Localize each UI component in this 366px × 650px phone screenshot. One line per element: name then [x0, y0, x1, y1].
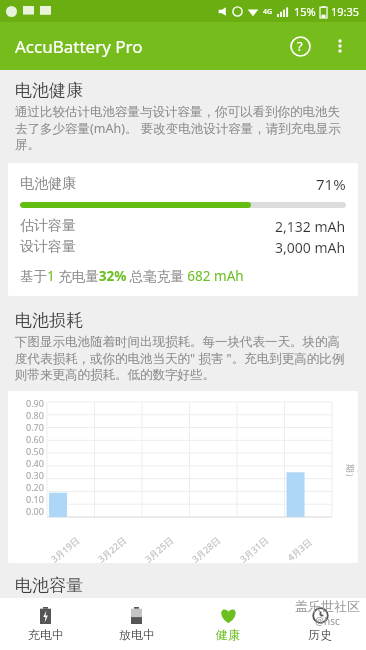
staticText: 0.40	[26, 457, 44, 469]
staticText: 下图显示电池随着时间出现损耗。每一块代表一天。块的高度代表损耗，或你的电池当天的…	[15, 334, 351, 383]
staticText: 0.30	[26, 469, 44, 481]
staticText: 4G	[263, 7, 273, 17]
staticText: 0.10	[26, 493, 44, 505]
staticText: 通过比较估计电池容量与设计容量，你可以看到你的电池失去了多少容量(mAh)。 要…	[15, 104, 351, 153]
staticText: 健康	[216, 627, 240, 642]
staticText: 15%	[294, 4, 316, 19]
staticText: 损耗（周期）	[344, 464, 358, 490]
staticText: 0.50	[26, 445, 44, 457]
staticText: 基于1 充电量32% 总毫克量 682 mAh	[20, 267, 244, 285]
button[interactable]: Help	[280, 26, 320, 66]
button[interactable]: 0.90	[8, 391, 358, 563]
button[interactable]: More options	[320, 26, 360, 66]
staticText: 0.60	[26, 433, 44, 445]
staticText: 充电中	[28, 627, 64, 642]
staticText: 19:35	[331, 4, 360, 19]
button[interactable]: 充电中	[0, 598, 91, 650]
staticText: 盖乐世社区	[295, 598, 360, 614]
staticText: 3月22日	[95, 533, 129, 563]
staticText: 电池健康	[20, 175, 76, 193]
staticText: 历史	[308, 627, 332, 642]
staticText: 电池损耗	[15, 310, 83, 331]
staticText: 71%	[316, 174, 346, 194]
staticText: @hsc	[315, 614, 340, 628]
staticText: 3月31日	[237, 533, 271, 563]
staticText: 3,000 mAh	[275, 238, 346, 257]
button[interactable]: 放电中	[91, 598, 182, 650]
staticText: 电池容量	[15, 575, 83, 596]
staticText: 设计容量	[20, 238, 76, 256]
staticText: 3月19日	[48, 533, 82, 563]
staticText: 电池健康	[15, 80, 83, 101]
button[interactable]: 历史	[274, 598, 366, 650]
staticText: 3月25日	[142, 533, 176, 563]
staticText: 0.20	[26, 481, 44, 493]
staticText: 0.70	[26, 421, 44, 433]
staticText: 0.80	[26, 409, 44, 421]
staticText: AccuBattery Pro	[15, 35, 143, 58]
staticText: 2,132 mAh	[275, 217, 346, 236]
staticText: 4月3日	[284, 535, 314, 563]
staticText: 0.00	[26, 505, 44, 517]
staticText: 放电中	[119, 627, 155, 642]
staticText: 3月28日	[189, 533, 223, 563]
staticText: 估计容量	[20, 217, 76, 235]
button[interactable]: 健康	[182, 598, 274, 650]
staticText: ?	[297, 37, 303, 55]
button[interactable]: 电池健康	[8, 163, 358, 296]
staticText: 0.90	[26, 397, 44, 409]
